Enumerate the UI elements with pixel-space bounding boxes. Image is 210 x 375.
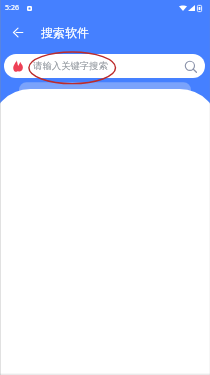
staticText: 搜索软件: [41, 25, 89, 40]
button[interactable]: Back: [0, 18, 35, 46]
button[interactable]: 请输入关键字搜索: [4, 54, 205, 78]
staticText: 请输入关键字搜索: [33, 60, 109, 72]
staticText: 5:26: [5, 3, 19, 13]
